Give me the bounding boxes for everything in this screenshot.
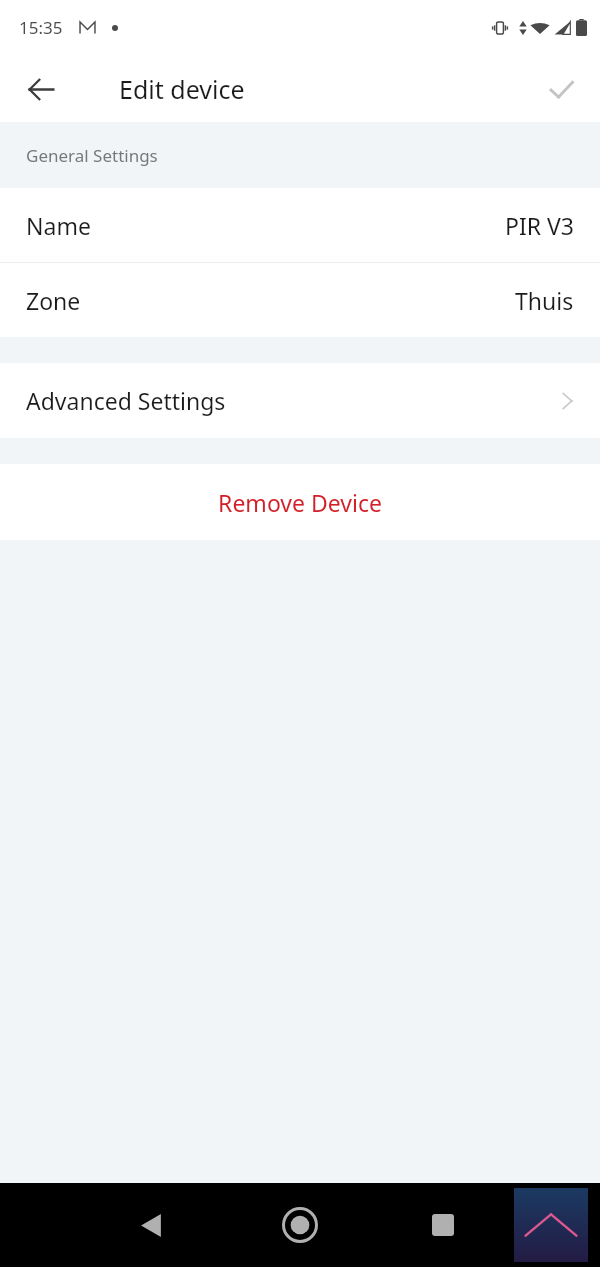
button[interactable]: Advanced Settings	[0, 363, 600, 438]
staticText: Name	[26, 210, 91, 241]
button[interactable]: Zone	[0, 263, 600, 337]
button[interactable]: Back	[123, 1197, 179, 1253]
button[interactable]: Save	[533, 61, 589, 117]
staticText: Thuis	[515, 285, 574, 316]
staticText: Edit device	[119, 72, 245, 106]
staticText: Remove Device	[218, 487, 382, 518]
staticText: Zone	[26, 285, 81, 316]
button[interactable]: Expand panel	[514, 1188, 588, 1262]
staticText: General Settings	[26, 144, 158, 167]
button[interactable]: Name	[0, 188, 600, 262]
button[interactable]: Remove Device	[0, 464, 600, 540]
button[interactable]: Home	[271, 1196, 329, 1254]
button[interactable]: Back	[13, 61, 69, 117]
button[interactable]: Recent apps	[415, 1197, 471, 1253]
staticText: 15:35	[19, 16, 63, 39]
staticText: Advanced Settings	[26, 385, 226, 416]
staticText: PIR V3	[505, 210, 574, 241]
